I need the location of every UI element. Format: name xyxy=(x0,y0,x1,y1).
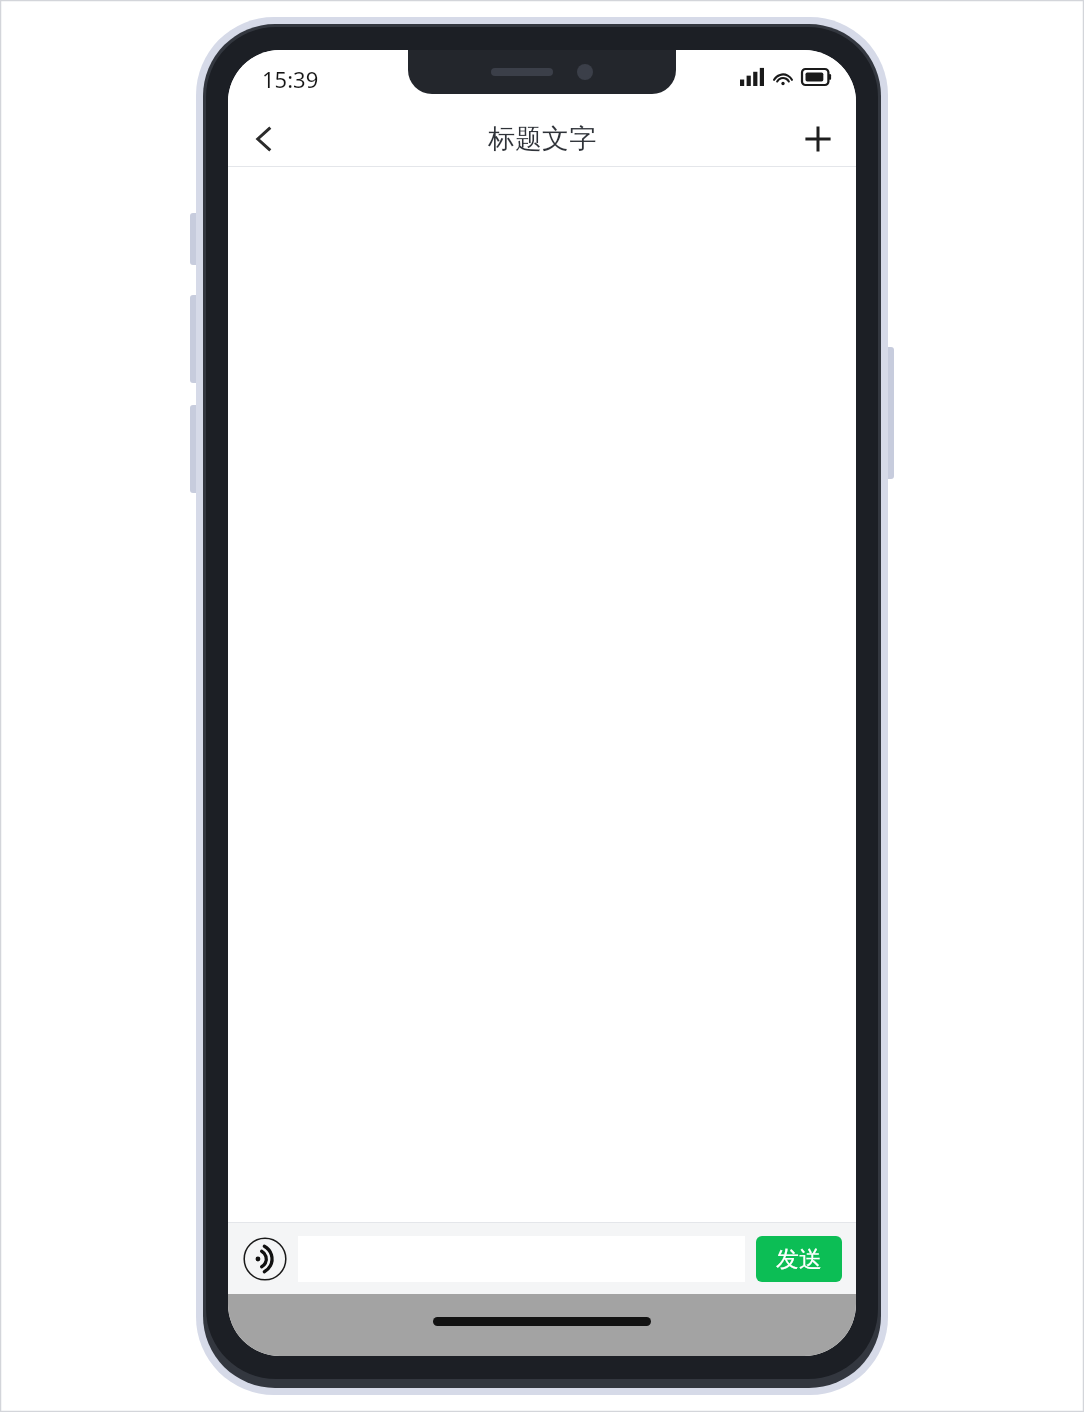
staticText: 发送 xyxy=(776,1245,822,1274)
staticText: 标题文字 xyxy=(488,122,596,156)
button[interactable]: Voice input xyxy=(242,1236,288,1282)
button[interactable]: 发送 xyxy=(756,1236,842,1282)
button[interactable]: Back xyxy=(238,113,290,165)
staticText: 15:39 xyxy=(262,64,319,94)
button[interactable]: Add xyxy=(792,113,844,165)
